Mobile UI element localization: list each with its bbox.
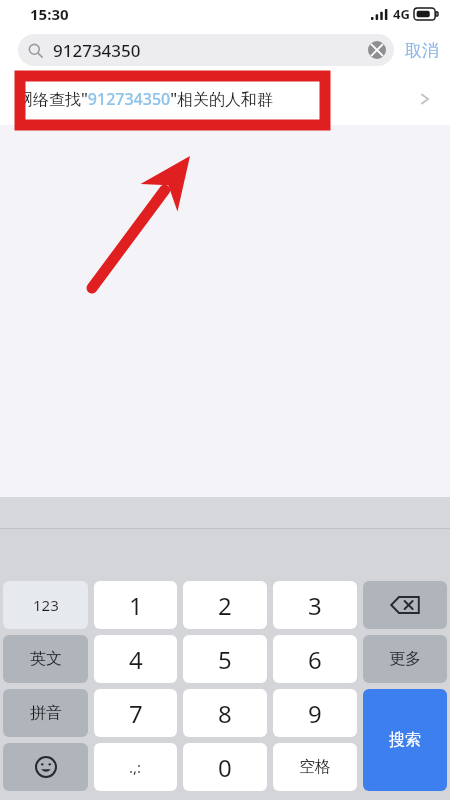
staticText: 拼音	[30, 703, 62, 723]
button[interactable]: 网络查找"912734350"相关的人和群	[0, 72, 450, 125]
button[interactable]: 123	[3, 581, 88, 629]
button[interactable]: 5	[183, 635, 267, 683]
staticText: 4G	[393, 5, 410, 23]
button[interactable]: 更多	[363, 635, 447, 683]
button[interactable]: 0	[183, 743, 267, 791]
staticText: 搜索	[389, 730, 421, 750]
button[interactable]: 4	[94, 635, 177, 683]
button[interactable]: 1	[94, 581, 177, 629]
button[interactable]: 9	[273, 689, 357, 737]
staticText: 3	[308, 589, 322, 622]
staticText: 123	[33, 595, 59, 615]
button[interactable]: 3	[273, 581, 357, 629]
staticText: 6	[308, 643, 322, 676]
staticText: 2	[218, 589, 232, 622]
staticText: 5	[218, 643, 232, 676]
button[interactable]: 2	[183, 581, 267, 629]
staticText: 4	[129, 643, 143, 676]
staticText: 0	[218, 751, 232, 784]
staticText: 8	[218, 697, 232, 730]
button[interactable]: 912734350	[18, 34, 394, 66]
staticText: 英文	[30, 649, 62, 669]
button[interactable]: 英文	[3, 635, 88, 683]
staticText: .,:	[129, 757, 142, 777]
staticText: 9	[308, 697, 322, 730]
button[interactable]: Clear text	[362, 35, 392, 65]
staticText: 空格	[299, 757, 331, 777]
button[interactable]: 取消	[394, 34, 450, 67]
button[interactable]: 拼音	[3, 689, 88, 737]
staticText: 更多	[389, 649, 421, 669]
button[interactable]: 7	[94, 689, 177, 737]
staticText: 15:30	[30, 4, 69, 24]
staticText: 取消	[405, 40, 439, 61]
button[interactable]: 6	[273, 635, 357, 683]
button[interactable]: 8	[183, 689, 267, 737]
staticText: 网络查找"912734350"相关的人和群	[17, 88, 426, 110]
button[interactable]: .,:	[94, 743, 177, 791]
button[interactable]: Backspace	[363, 581, 447, 629]
staticText: 1	[129, 589, 143, 622]
staticText: 912734350	[53, 39, 362, 62]
button[interactable]: 空格	[273, 743, 357, 791]
button[interactable]: Emoji	[3, 743, 88, 791]
staticText: 7	[129, 697, 143, 730]
button[interactable]: 搜索	[363, 689, 447, 791]
